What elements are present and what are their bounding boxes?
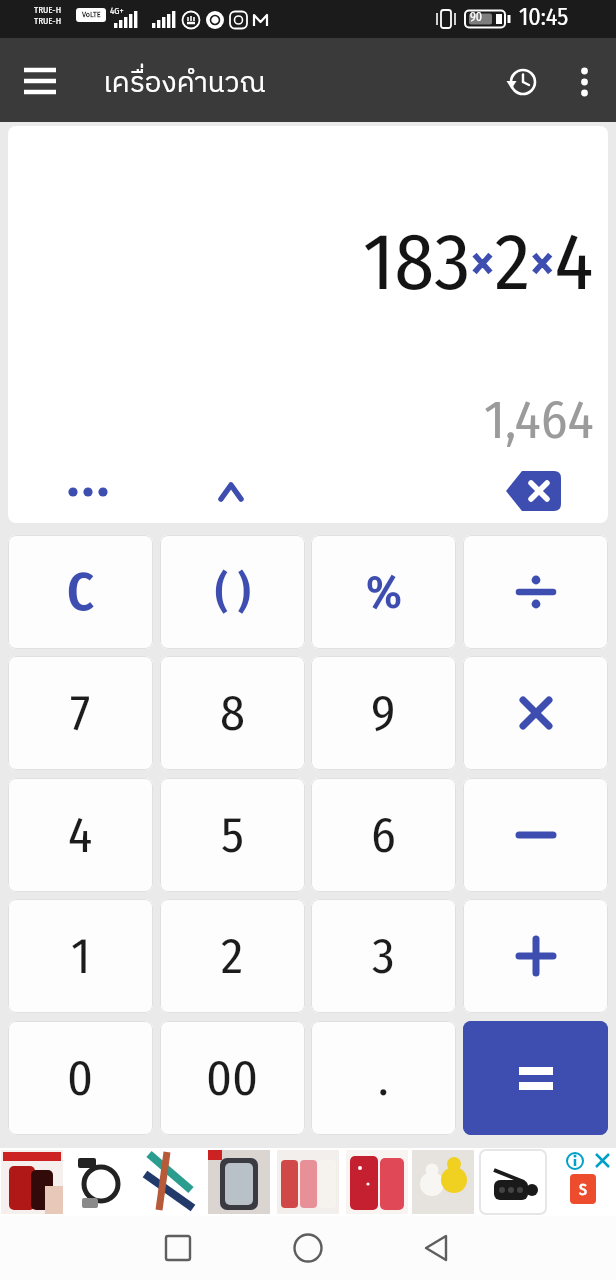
button[interactable]: ( ): [160, 535, 305, 649]
staticText: 0: [67, 1048, 94, 1108]
button[interactable]: [495, 54, 551, 110]
staticText: 8: [220, 683, 245, 743]
button[interactable]: S: [0, 1148, 616, 1216]
staticText: 10:45: [519, 3, 569, 32]
button[interactable]: %: [311, 535, 456, 649]
button[interactable]: 5: [160, 778, 305, 892]
button[interactable]: [463, 656, 608, 770]
staticText: 9: [371, 683, 396, 743]
button[interactable]: [38, 462, 138, 522]
button[interactable]: [560, 54, 608, 110]
staticText: ( ): [215, 566, 251, 619]
button[interactable]: [486, 460, 582, 522]
staticText: 2: [221, 926, 244, 986]
staticText: %: [366, 565, 402, 620]
button[interactable]: 6: [311, 778, 456, 892]
staticText: VoLTE: [82, 10, 101, 20]
button[interactable]: [463, 535, 608, 649]
staticText: 1,464: [484, 388, 594, 453]
staticText: 1: [71, 926, 91, 986]
staticText: 6: [371, 805, 396, 865]
staticText: 3: [372, 926, 395, 986]
button[interactable]: 00: [160, 1021, 305, 1135]
staticText: 5: [221, 805, 244, 865]
button[interactable]: [407, 1218, 467, 1278]
button[interactable]: [148, 1218, 208, 1278]
staticText: 4G+: [110, 6, 124, 17]
button[interactable]: 2: [160, 899, 305, 1013]
button[interactable]: 1: [8, 899, 153, 1013]
staticText: เครื่องคำนวณ: [103, 61, 266, 107]
staticText: S: [579, 1180, 587, 1199]
button[interactable]: 8: [160, 656, 305, 770]
button[interactable]: [198, 462, 264, 522]
button[interactable]: C: [8, 535, 153, 649]
staticText: TRUE-H: [34, 16, 62, 27]
button[interactable]: 0: [8, 1021, 153, 1135]
staticText: C: [67, 561, 95, 623]
staticText: TRUE-H: [34, 5, 62, 16]
button[interactable]: 7: [8, 656, 153, 770]
button[interactable]: [463, 778, 608, 892]
button[interactable]: 9: [311, 656, 456, 770]
staticText: 00: [206, 1048, 259, 1108]
button[interactable]: [463, 1021, 608, 1135]
button[interactable]: [278, 1218, 338, 1278]
button[interactable]: .: [311, 1021, 456, 1135]
staticText: .: [378, 1048, 389, 1108]
button[interactable]: [12, 58, 68, 108]
button[interactable]: 3: [311, 899, 456, 1013]
staticText: 4: [68, 805, 93, 865]
staticText: 183×2×4: [363, 214, 594, 310]
staticText: 90: [470, 10, 483, 24]
button[interactable]: [463, 899, 608, 1013]
staticText: 7: [70, 683, 91, 743]
button[interactable]: 4: [8, 778, 153, 892]
